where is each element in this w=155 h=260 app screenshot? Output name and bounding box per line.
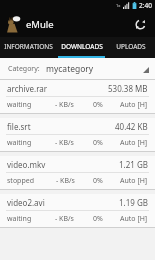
staticText: Auto [H] [120,100,148,110]
staticText: stopped [7,176,34,186]
staticText: file.srt [7,121,31,132]
staticText: 0% [93,214,103,224]
button[interactable]: UPLOADS [107,37,155,56]
staticText: 1.21 GB [119,159,148,170]
staticText: mycategory [46,63,94,75]
button[interactable]: video2.avi [0,194,155,232]
button[interactable]: archive.rar [0,80,155,118]
staticText: waiting [7,100,32,110]
staticText: DOWNLOADS [61,42,103,51]
staticText: - KB/s [55,214,74,224]
button[interactable]: video.mkv [0,156,155,194]
staticText: video.mkv [7,159,46,170]
staticText: 530.38 MB [108,83,148,94]
staticText: waiting [7,214,32,224]
staticText: 0% [93,176,103,186]
staticText: 0% [93,100,103,110]
staticText: INFORMATIONS [4,42,53,51]
staticText: waiting [7,138,32,148]
staticText: - KB/s [55,138,74,148]
staticText: Category: [8,64,40,74]
staticText: 40.42 KB [115,121,148,132]
staticText: eMule [26,18,54,31]
staticText: archive.rar [7,83,48,94]
staticText: 1x [116,3,121,8]
staticText: - KB/s [55,100,74,110]
button[interactable]: Category: [0,58,155,80]
staticText: video2.avi [7,197,45,208]
staticText: - KB/s [56,176,75,186]
button[interactable]: Refresh [127,11,153,37]
button[interactable]: DOWNLOADS [56,37,107,56]
staticText: Auto [H] [120,214,148,224]
staticText: 0% [93,138,103,148]
staticText: Auto [H] [120,138,148,148]
staticText: 2:40 [139,1,152,10]
staticText: Auto [H] [120,176,148,186]
button[interactable]: file.srt [0,118,155,156]
button[interactable]: INFORMATIONS [0,37,56,56]
staticText: UPLOADS [116,42,146,51]
staticText: 1.19 GB [119,197,148,208]
